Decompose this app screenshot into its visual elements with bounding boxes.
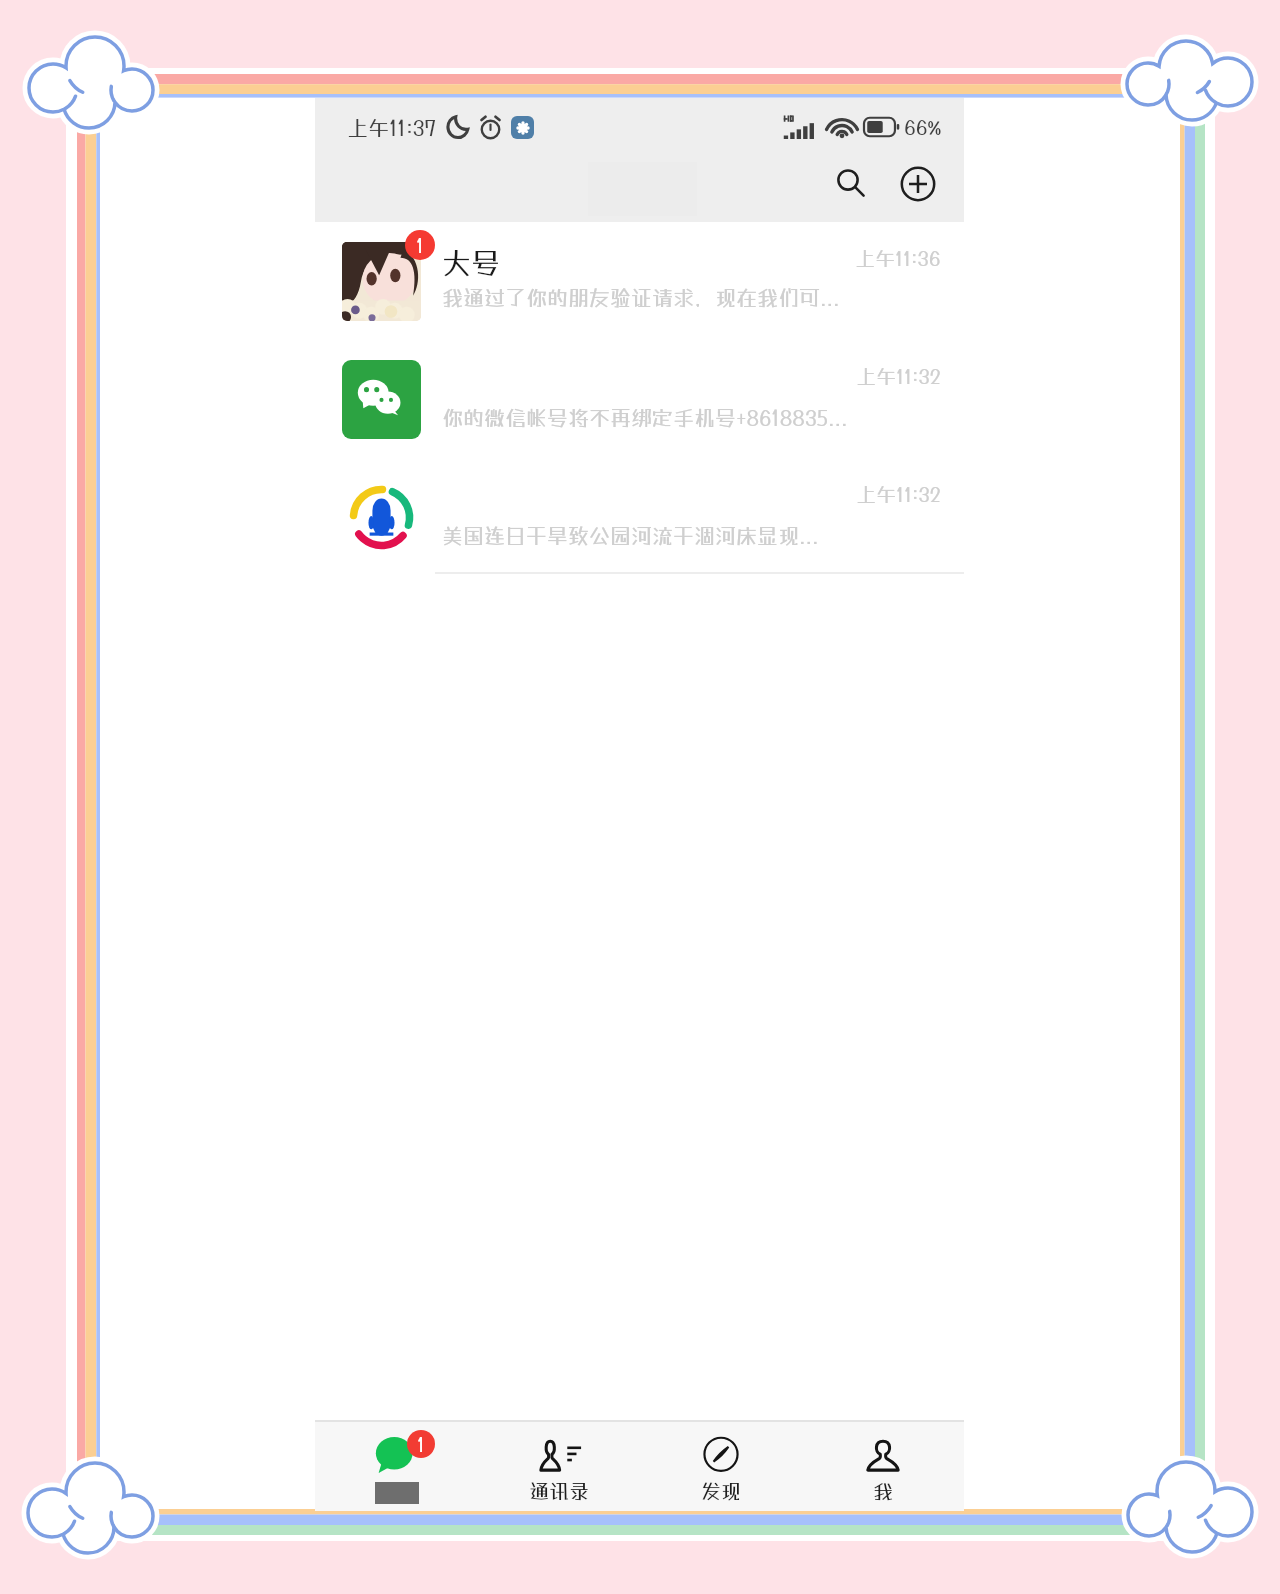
staticText: 1 xyxy=(416,234,424,256)
staticText: 上午11:32 xyxy=(856,364,941,388)
button[interactable]: 你的微信帐号将不再绑定手机号+8618835... xyxy=(315,340,964,458)
staticText: 我 xyxy=(873,1479,893,1503)
button[interactable]: 发现 xyxy=(640,1422,802,1511)
staticText: 通讯录 xyxy=(529,1479,589,1503)
staticText: 66% xyxy=(904,115,942,139)
staticText: 上午11:36 xyxy=(855,246,941,270)
button[interactable]: 通讯录 xyxy=(478,1422,640,1511)
button[interactable]: Search xyxy=(828,161,874,207)
button[interactable]: WeChat xyxy=(315,1422,478,1511)
staticText: 1 xyxy=(417,1433,425,1455)
staticText: 我通过了你的朋友验证请求，现在我们可... xyxy=(442,285,840,310)
staticText: 大号 xyxy=(442,246,501,280)
staticText: 你的微信帐号将不再绑定手机号+8618835... xyxy=(442,405,848,430)
staticText: 上午11:32 xyxy=(856,482,941,506)
staticText: 美国连日干旱致公园河流干涸河床显现... xyxy=(442,523,819,548)
staticText: 发现 xyxy=(701,1479,741,1503)
button[interactable]: 美国连日干旱致公园河流干涸河床显现... xyxy=(315,458,964,576)
button[interactable]: New chat xyxy=(895,161,941,207)
staticText: 上午11:37 xyxy=(347,115,437,140)
button[interactable]: 1 xyxy=(315,222,964,340)
button[interactable]: 我 xyxy=(802,1422,964,1511)
